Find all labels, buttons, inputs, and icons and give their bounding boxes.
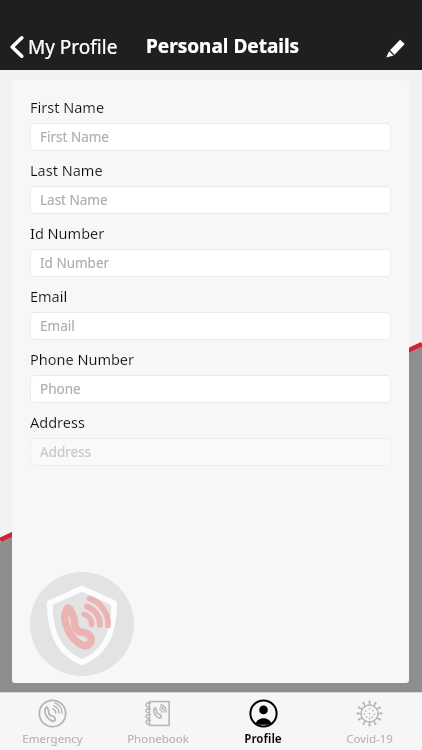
button[interactable]: Profile [210, 693, 316, 747]
staticText: Personal Details [146, 33, 300, 59]
staticText: Last Name [40, 191, 108, 209]
staticText: Email [30, 286, 68, 306]
button[interactable]: Phone [30, 375, 391, 403]
staticText: Address [30, 412, 85, 432]
staticText: Address [40, 443, 92, 461]
staticText: Id Number [40, 254, 110, 272]
button[interactable]: My Profile [0, 24, 126, 70]
staticText: Id Number [30, 223, 105, 243]
button[interactable]: Email [30, 312, 391, 340]
staticText: Phone [40, 380, 81, 398]
staticText: First Name [30, 97, 105, 117]
button[interactable]: Edit [368, 24, 422, 70]
staticText: Profile [244, 731, 282, 747]
staticText: Emergency [22, 731, 83, 747]
staticText: My Profile [28, 34, 118, 60]
staticText: First Name [40, 128, 109, 146]
staticText: Covid-19 [346, 731, 393, 747]
staticText: Email [40, 317, 75, 335]
button[interactable]: First Name [30, 123, 391, 151]
button[interactable]: Emergency [0, 693, 105, 747]
button[interactable]: Address [30, 438, 391, 466]
staticText: Phonebook [127, 731, 189, 747]
staticText: Last Name [30, 160, 103, 180]
button[interactable]: Id Number [30, 249, 391, 277]
button[interactable]: Phonebook [105, 693, 210, 747]
staticText: Phone Number [30, 349, 135, 369]
button[interactable]: Last Name [30, 186, 391, 214]
button[interactable]: Covid-19 [316, 693, 422, 747]
